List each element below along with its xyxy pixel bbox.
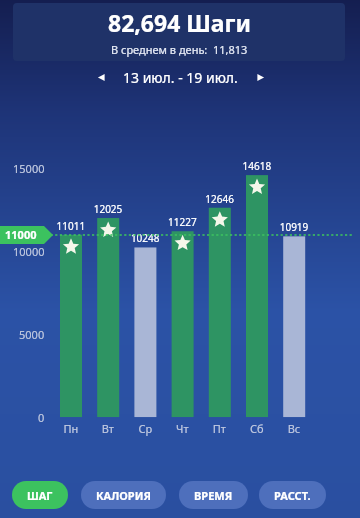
button[interactable]: КАЛОРИЯ xyxy=(81,481,166,509)
button[interactable]: Следующая неделя xyxy=(247,64,273,90)
staticText: ВРЕМЯ xyxy=(194,488,233,503)
staticText: 82,694 Шаги xyxy=(108,7,251,38)
button[interactable]: Предыдущая неделя xyxy=(88,64,114,90)
staticText: В среднем в день: 11,813 xyxy=(111,42,248,57)
staticText: 13 июл. - 19 июл. xyxy=(123,68,238,87)
button[interactable]: ШАГ xyxy=(12,481,68,509)
staticText: КАЛОРИЯ xyxy=(96,488,151,503)
button[interactable]: РАССТ. xyxy=(259,481,326,509)
button[interactable]: ВРЕМЯ xyxy=(179,481,248,509)
staticText: РАССТ. xyxy=(274,488,311,503)
button[interactable]: 82,694 Шаги xyxy=(13,3,345,61)
staticText: ШАГ xyxy=(27,488,53,503)
